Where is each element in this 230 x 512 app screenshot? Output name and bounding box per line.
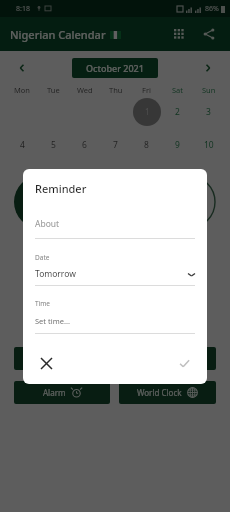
staticText: Sat bbox=[172, 85, 184, 95]
staticText: Tomorrow bbox=[35, 268, 76, 280]
staticText: 8:18 bbox=[16, 4, 30, 14]
button[interactable]: Next month bbox=[198, 58, 218, 78]
staticText: 10 bbox=[204, 139, 214, 151]
button[interactable]: Confirm bbox=[173, 352, 195, 374]
button[interactable]: 1 bbox=[133, 98, 161, 126]
button[interactable]: 6 bbox=[69, 139, 100, 151]
staticText: 86% bbox=[205, 4, 219, 14]
staticText: Thu bbox=[109, 85, 123, 95]
staticText: Holidays bbox=[38, 353, 71, 364]
staticText: Mon bbox=[14, 85, 30, 95]
staticText: Nigerian Calendar bbox=[10, 27, 106, 42]
staticText: 6 bbox=[82, 139, 87, 151]
staticText: 7 bbox=[113, 139, 118, 151]
button[interactable]: Set time... bbox=[35, 316, 195, 326]
staticText: Alarm bbox=[43, 387, 66, 398]
staticText: Date bbox=[35, 253, 50, 262]
button[interactable]: Reminder bbox=[119, 347, 216, 370]
button[interactable]: Cancel bbox=[35, 352, 57, 374]
button[interactable]: October 2021 bbox=[72, 58, 158, 78]
staticText: Wed bbox=[77, 85, 93, 95]
button[interactable]: Holidays bbox=[14, 347, 110, 370]
staticText: Time bbox=[35, 299, 51, 308]
staticText: World Clock bbox=[137, 387, 182, 398]
button[interactable]: Apps bbox=[166, 21, 192, 47]
staticText: 2 bbox=[175, 106, 180, 118]
staticText: Fri bbox=[142, 85, 151, 95]
button[interactable]: 4 bbox=[6, 139, 38, 151]
button[interactable]: World Clock bbox=[119, 381, 216, 404]
button[interactable]: 8 bbox=[131, 139, 162, 151]
staticText: Reminder bbox=[35, 181, 87, 196]
staticText: Tue bbox=[47, 85, 60, 95]
staticText: 5 bbox=[51, 139, 56, 151]
staticText: 9 bbox=[175, 139, 180, 151]
staticText: 1 bbox=[145, 106, 150, 118]
button[interactable]: 5 bbox=[38, 139, 69, 151]
button[interactable]: 10 bbox=[193, 139, 224, 151]
button[interactable]: Tomorrow bbox=[35, 268, 195, 280]
staticText: 8 bbox=[144, 139, 149, 151]
button[interactable]: Previous month bbox=[12, 58, 32, 78]
staticText: 4 bbox=[20, 139, 25, 151]
button[interactable]: Share bbox=[196, 21, 222, 47]
staticText: October 2021 bbox=[86, 62, 144, 74]
button[interactable]: 9 bbox=[162, 139, 193, 151]
staticText: 3 bbox=[206, 106, 211, 118]
button[interactable]: Alarm bbox=[14, 381, 110, 404]
staticText: Sun bbox=[202, 85, 216, 95]
button[interactable]: 7 bbox=[100, 139, 131, 151]
button[interactable]: About bbox=[35, 218, 60, 230]
